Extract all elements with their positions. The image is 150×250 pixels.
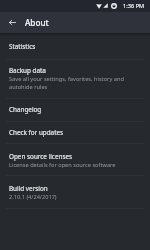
staticText: Save all your settings, favorites, histo… bbox=[9, 75, 143, 91]
staticText: About bbox=[25, 17, 49, 28]
staticText: Open source licenses bbox=[9, 152, 73, 161]
staticText: Check for updates bbox=[9, 128, 64, 137]
staticText: Statistics bbox=[9, 42, 36, 51]
staticText: License details for open source software bbox=[9, 161, 143, 169]
button[interactable]: Open source licenses bbox=[0, 144, 150, 176]
button[interactable]: Backup data bbox=[0, 60, 150, 99]
button[interactable]: Check for updates bbox=[0, 122, 150, 144]
staticText: 1:36 PM bbox=[123, 2, 145, 10]
staticText: Build version bbox=[9, 184, 48, 193]
button[interactable]: Build version bbox=[0, 176, 150, 209]
button[interactable]: Changelog bbox=[0, 99, 150, 122]
staticText: 2.10.1 (4/24/2017) bbox=[9, 193, 143, 201]
staticText: Backup data bbox=[9, 66, 46, 75]
button[interactable]: Navigate up bbox=[1, 12, 22, 33]
staticText: Changelog bbox=[9, 105, 42, 114]
button[interactable]: Statistics bbox=[0, 33, 150, 60]
